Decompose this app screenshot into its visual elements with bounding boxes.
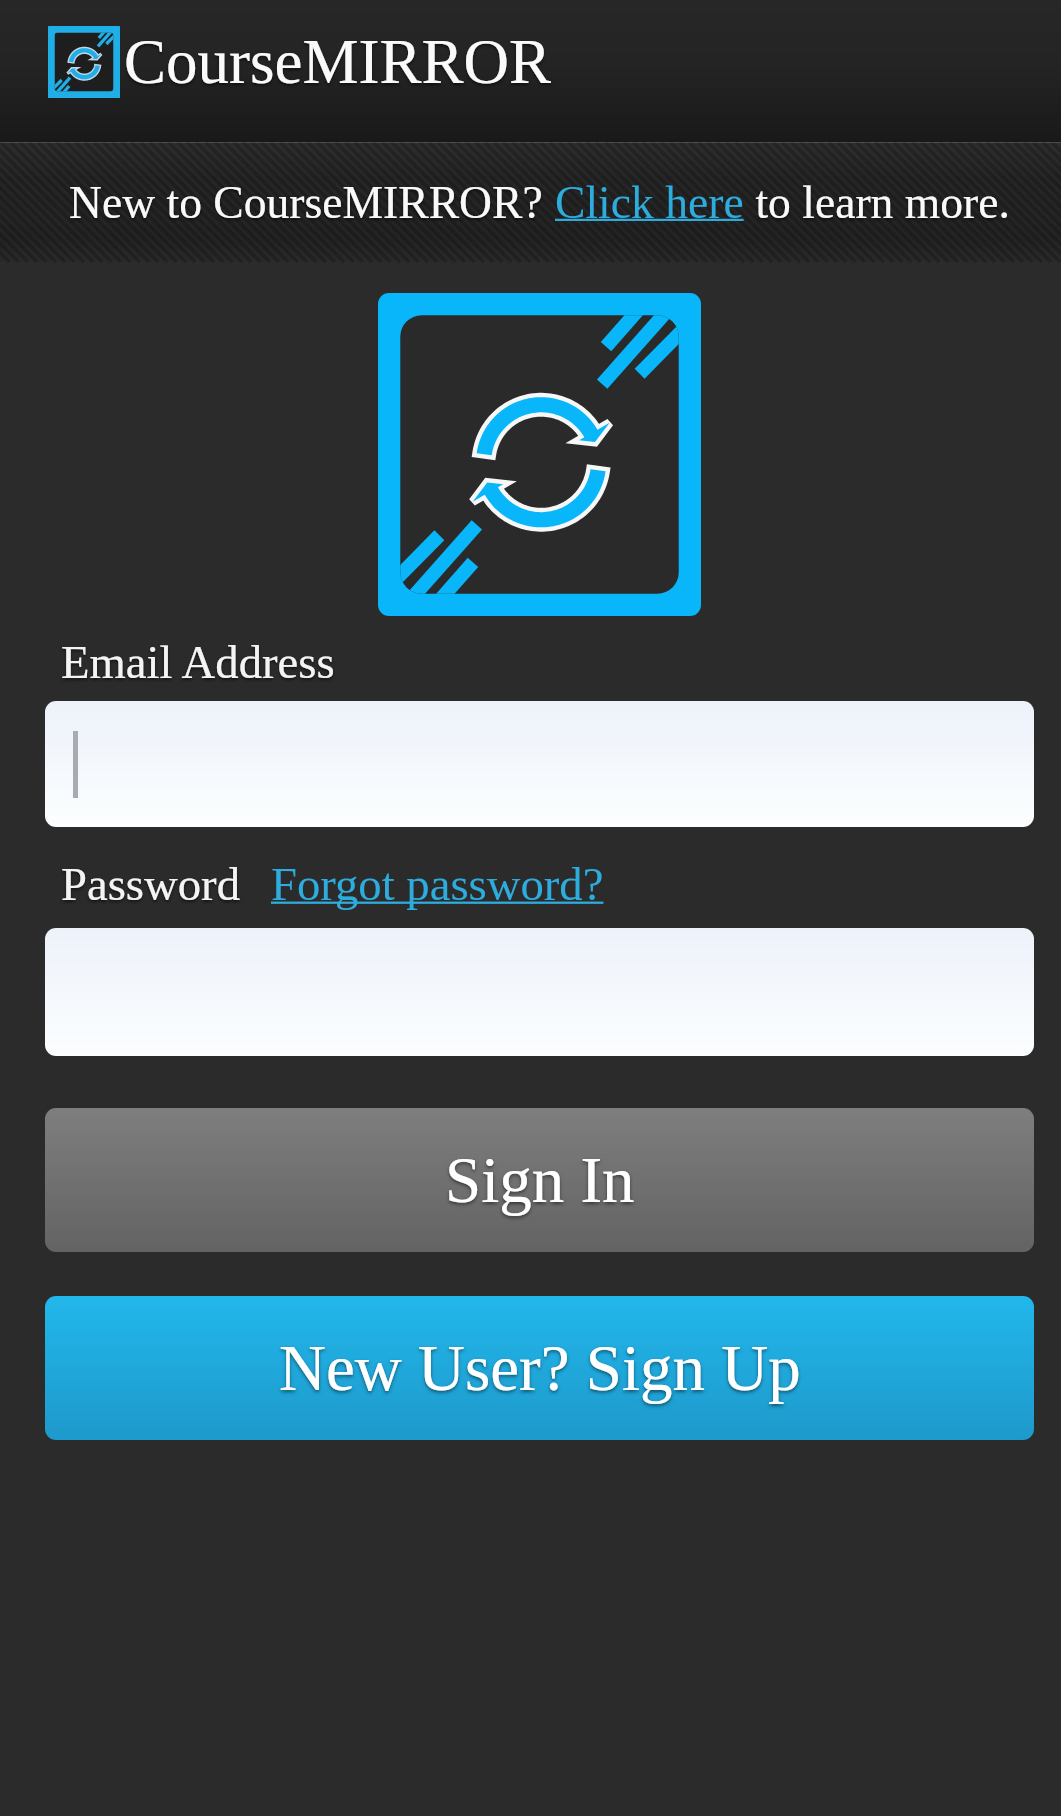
- button[interactable]: Forgot password?: [271, 858, 604, 910]
- staticText: Sign In: [445, 1144, 635, 1216]
- staticText: New User? Sign Up: [279, 1332, 801, 1404]
- button[interactable]: New User? Sign Up: [45, 1296, 1034, 1440]
- button[interactable]: Sign In: [45, 1108, 1034, 1252]
- button[interactable]: Click here: [555, 177, 744, 227]
- button[interactable]: [45, 928, 1034, 1056]
- other: CourseMIRROR logo: [378, 293, 701, 616]
- other: CourseMIRROR logo: [48, 26, 120, 98]
- staticText: Email Address: [61, 636, 335, 688]
- staticText: CourseMIRROR: [124, 27, 552, 97]
- staticText: New to CourseMIRROR?: [69, 177, 555, 227]
- staticText: Password: [61, 858, 240, 910]
- staticText: to learn more.: [744, 177, 1010, 227]
- button[interactable]: CourseMIRROR logo: [48, 26, 552, 98]
- button[interactable]: [45, 701, 1034, 827]
